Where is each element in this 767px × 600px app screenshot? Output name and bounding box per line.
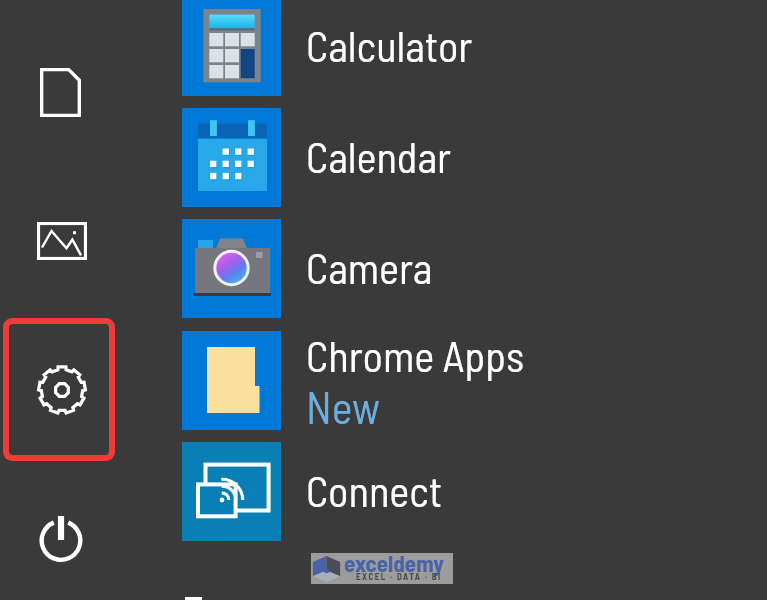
button[interactable]: Documents: [20, 48, 100, 136]
staticText: Calculator: [306, 19, 473, 70]
staticText: Connect: [306, 464, 443, 515]
staticText: Calendar: [306, 130, 452, 181]
staticText: EXCEL · DATA · BI: [356, 571, 442, 582]
button[interactable]: Camera: [182, 219, 662, 318]
button[interactable]: Chrome Apps: [182, 331, 662, 430]
staticText: Camera: [306, 241, 433, 292]
button[interactable]: Settings: [3, 318, 115, 461]
button[interactable]: Calendar: [182, 108, 662, 207]
button[interactable]: Pictures: [17, 203, 107, 279]
button[interactable]: Calculator: [182, 0, 662, 96]
staticText: Chrome Apps: [306, 329, 525, 380]
staticText: New: [306, 380, 381, 428]
staticText: exceldemy: [344, 549, 444, 577]
button[interactable]: Connect: [182, 442, 662, 541]
button[interactable]: Power: [20, 498, 104, 578]
